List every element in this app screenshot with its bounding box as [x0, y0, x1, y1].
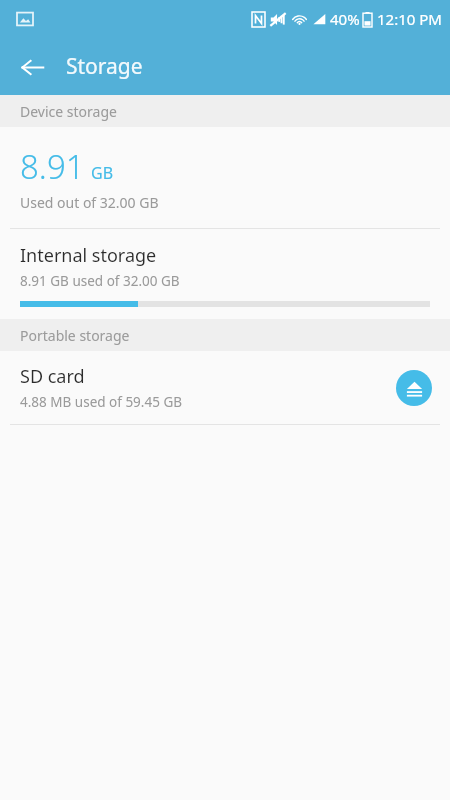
staticText: SD card: [20, 364, 85, 389]
staticText: 40%: [330, 9, 360, 29]
staticText: Used out of 32.00 GB: [20, 193, 159, 212]
staticText: Internal storage: [20, 243, 157, 268]
staticText: Device storage: [20, 102, 117, 121]
staticText: 8.91: [20, 144, 85, 189]
button[interactable]: Back: [10, 45, 54, 89]
button[interactable]: 8.91: [0, 127, 450, 228]
staticText: 12:10 PM: [377, 9, 442, 29]
button[interactable]: Eject SD card: [396, 370, 432, 406]
staticText: 4.88 MB used of 59.45 GB: [20, 393, 182, 411]
staticText: Portable storage: [20, 326, 130, 345]
staticText: Storage: [66, 52, 143, 81]
staticText: 8.91 GB used of 32.00 GB: [20, 272, 180, 290]
button[interactable]: Internal storage: [0, 229, 450, 319]
staticText: GB: [91, 162, 114, 184]
button[interactable]: SD card: [0, 351, 450, 424]
